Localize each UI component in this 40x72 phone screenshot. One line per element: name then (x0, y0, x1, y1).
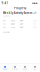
staticText: Wed (3, 26, 6, 28)
staticText: Last 7 days (3, 15, 11, 17)
staticText: Weekly Activity Summary (3, 11, 34, 15)
staticText: Goals (23, 68, 27, 70)
staticText: 9:41 (2, 1, 9, 5)
staticText: Me (34, 68, 36, 70)
staticText: Today (2, 68, 7, 70)
staticText: 25m (20, 26, 23, 28)
staticText: Mon (3, 20, 6, 22)
button[interactable]: Mon (3, 20, 37, 22)
staticText: Trends (12, 68, 18, 70)
button[interactable]: Me (30, 66, 40, 70)
staticText: 52m (20, 23, 23, 25)
button[interactable]: Today (0, 66, 10, 70)
staticText: 410 (34, 23, 37, 25)
button[interactable]: Trends (10, 66, 20, 70)
staticText: Tue (3, 23, 6, 25)
staticText: View details (3, 31, 10, 33)
staticText: 3,126 (11, 26, 15, 28)
button[interactable]: Tue (3, 23, 37, 25)
button[interactable]: Wed (3, 26, 37, 28)
button[interactable]: Goals (20, 66, 30, 70)
staticText: 6,804 (11, 23, 15, 25)
staticText: 38m (20, 20, 23, 22)
staticText: 260 (34, 26, 37, 28)
staticText: 320 (34, 20, 37, 22)
staticText: Progress (14, 6, 26, 10)
staticText: 4,210 (11, 20, 15, 22)
button[interactable]: Profile (34, 11, 37, 14)
